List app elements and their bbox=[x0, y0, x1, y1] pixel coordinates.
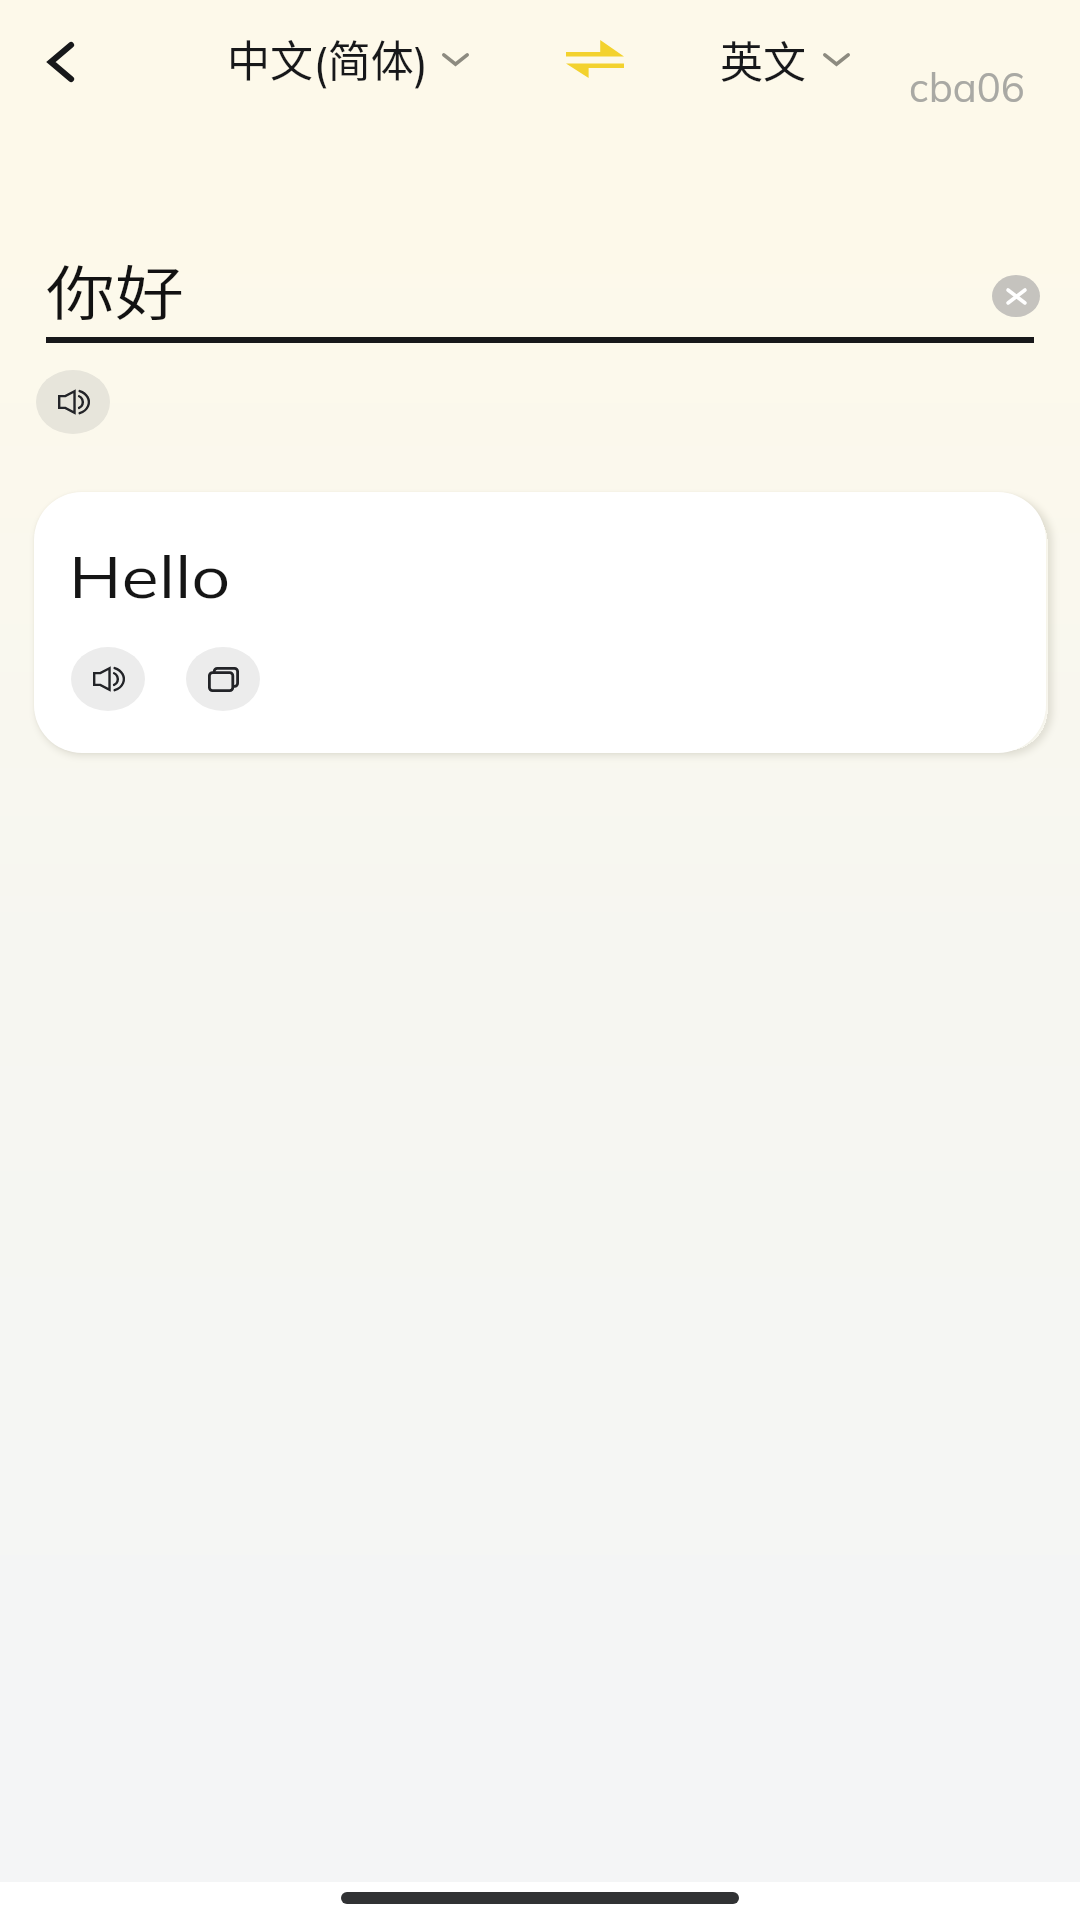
button[interactable]: Back bbox=[15, 16, 107, 108]
button[interactable]: Copy translation bbox=[186, 647, 260, 711]
staticText: 你好 bbox=[46, 247, 185, 332]
staticText: 中文(简体) bbox=[227, 27, 429, 91]
button[interactable]: Swap languages bbox=[546, 20, 644, 98]
button[interactable]: 中文(简体) bbox=[227, 23, 469, 95]
staticText: cba06 bbox=[909, 62, 1025, 112]
button[interactable]: Play pronunciation bbox=[71, 647, 145, 711]
button[interactable]: Hello bbox=[34, 492, 1046, 753]
staticText: 英文 bbox=[720, 28, 806, 90]
staticText: Hello bbox=[69, 540, 231, 613]
button[interactable]: Clear text bbox=[992, 275, 1040, 317]
button[interactable]: Play pronunciation of source text bbox=[36, 370, 110, 434]
button[interactable]: 英文 bbox=[720, 24, 850, 94]
